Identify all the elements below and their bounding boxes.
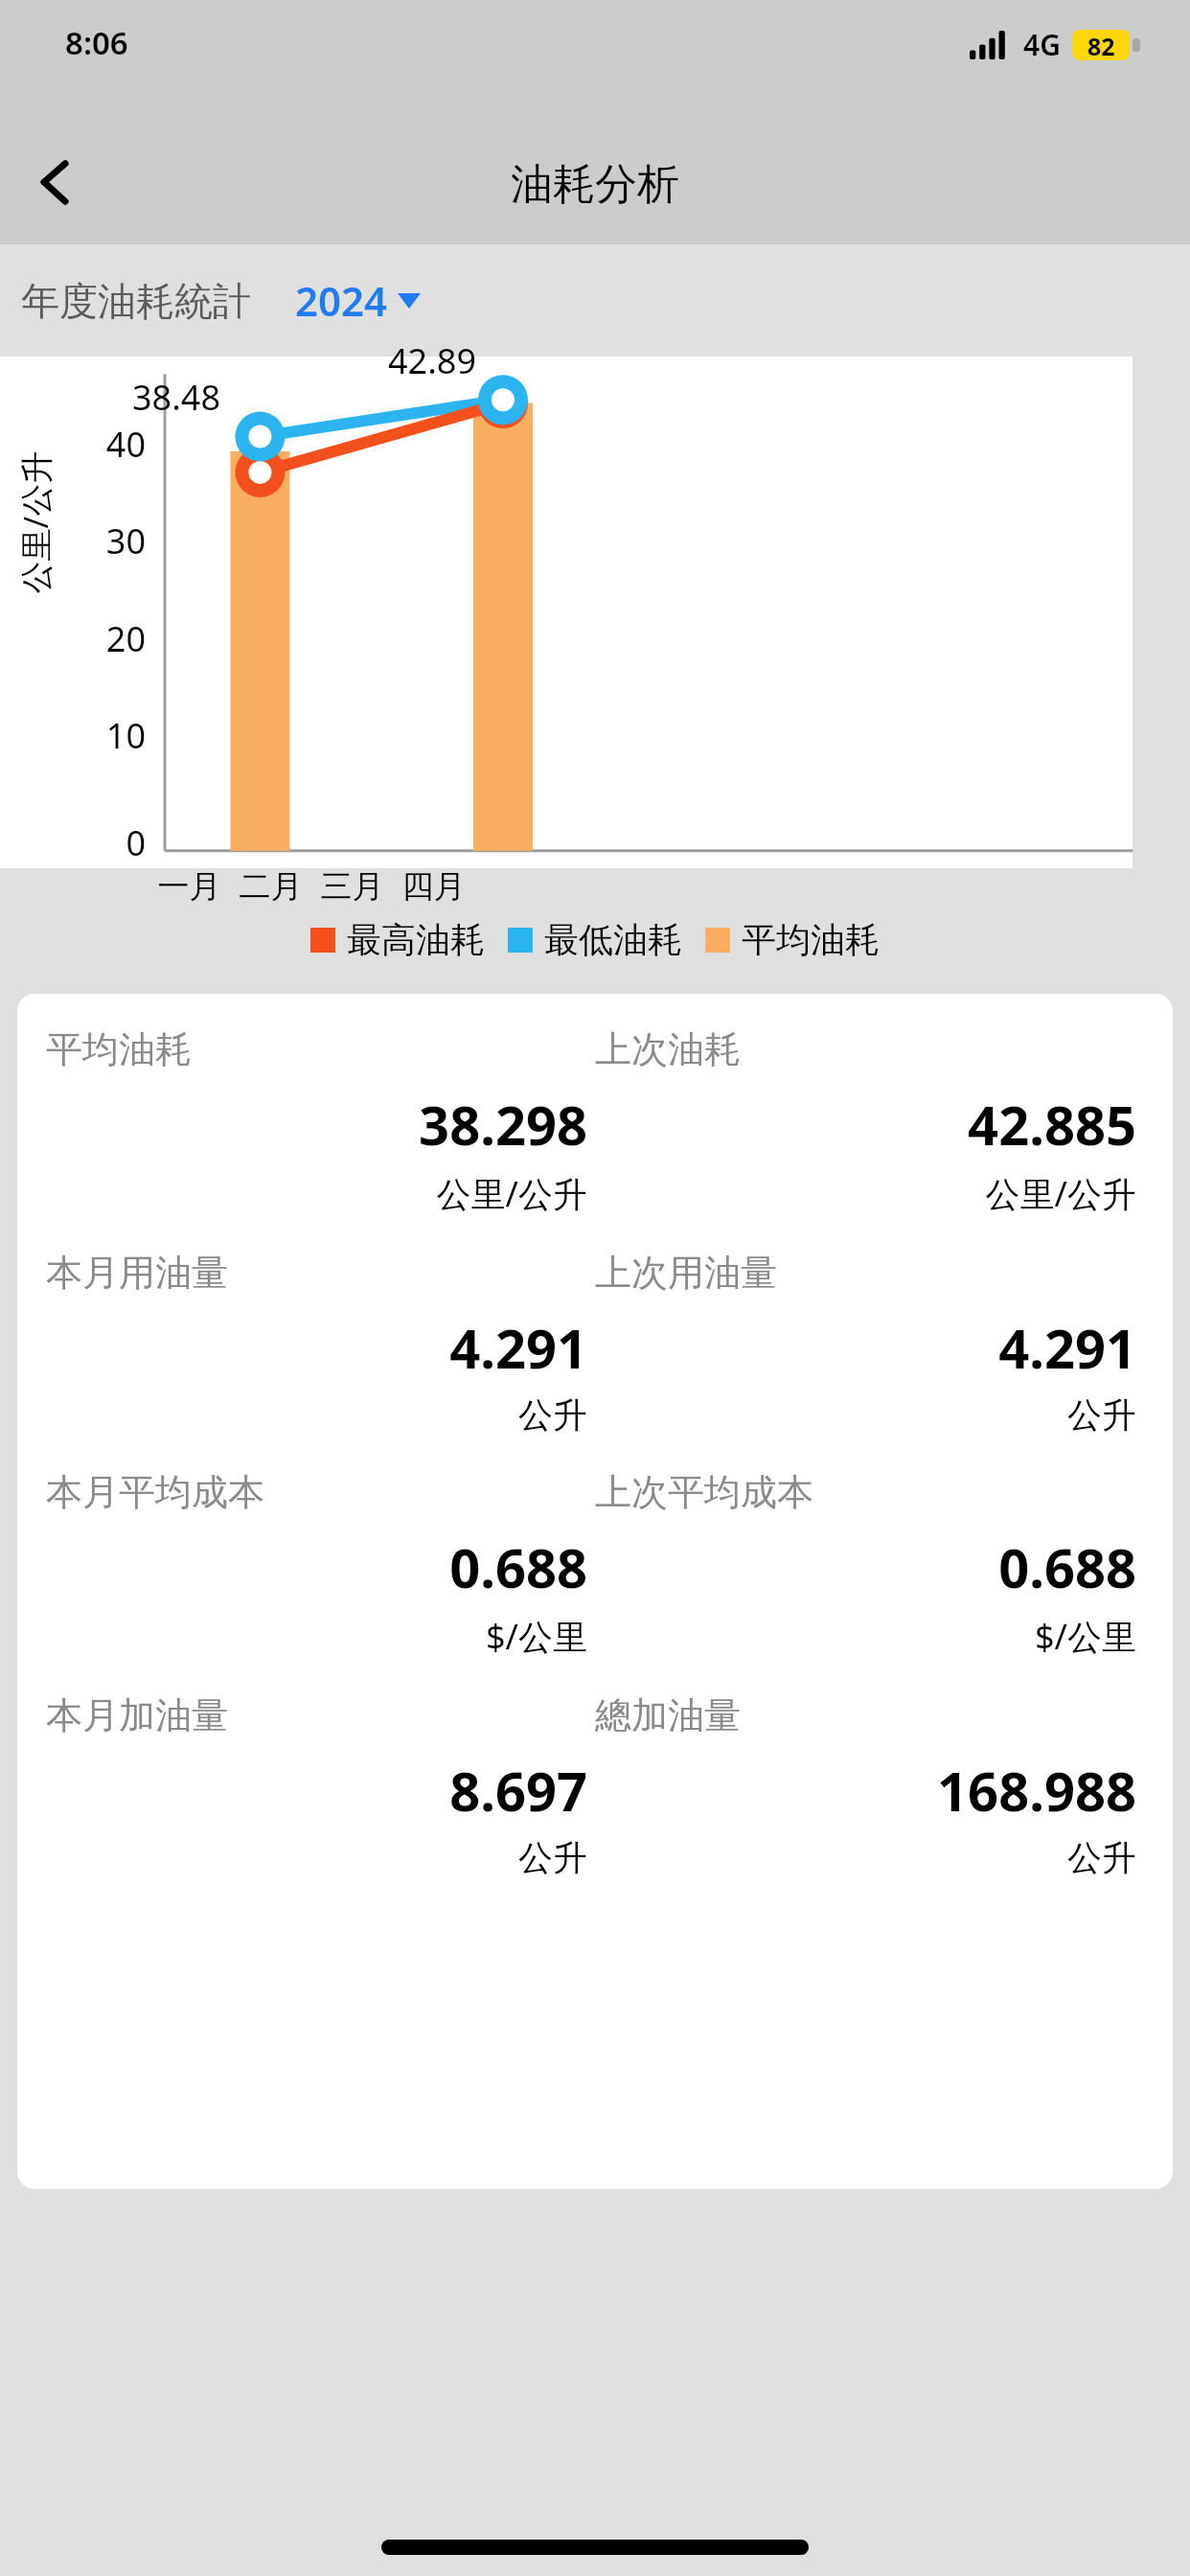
staticText: 公里/公升	[46, 1170, 587, 1217]
staticText: 三月	[311, 866, 393, 907]
staticText: 38.48	[132, 374, 221, 421]
staticText: 平均油耗	[46, 1026, 192, 1072]
staticText: 公里/公升	[595, 1170, 1136, 1217]
staticText: 油耗分析	[511, 158, 679, 211]
staticText: 總加油量	[595, 1692, 741, 1738]
button[interactable]: 本月加油量	[46, 1692, 595, 1879]
staticText: 本月平均成本	[46, 1469, 264, 1515]
button[interactable]: Back	[17, 144, 94, 220]
staticText: 0.688	[46, 1530, 587, 1603]
staticText: 年度油耗統計	[21, 277, 251, 325]
staticText: 40	[88, 421, 146, 468]
button[interactable]: 平均油耗	[46, 1026, 595, 1217]
staticText: 上次用油量	[595, 1250, 777, 1296]
button[interactable]: 本月用油量	[46, 1250, 595, 1437]
staticText: 4G	[1023, 25, 1061, 64]
button[interactable]: 總加油量	[595, 1692, 1144, 1879]
button[interactable]: 上次平均成本	[595, 1469, 1144, 1660]
staticText: 0.688	[595, 1530, 1136, 1603]
staticText: 8.697	[46, 1754, 587, 1827]
staticText: 公升	[595, 1836, 1136, 1879]
staticText: 本月用油量	[46, 1250, 228, 1296]
staticText: 4.291	[595, 1311, 1136, 1384]
staticText: 42.89	[388, 337, 477, 384]
staticText: 公升	[46, 1393, 587, 1437]
staticText: 公里/公升	[13, 451, 57, 594]
staticText: $/公里	[595, 1613, 1136, 1660]
staticText: 最低油耗	[544, 918, 682, 961]
staticText: 四月	[393, 866, 474, 907]
staticText: 30	[88, 517, 146, 564]
staticText: 平均油耗	[742, 918, 880, 961]
staticText: 最高油耗	[347, 918, 485, 961]
staticText: 上次油耗	[595, 1026, 741, 1072]
staticText: 2024	[295, 273, 388, 328]
staticText: 168.988	[595, 1754, 1136, 1827]
staticText: 20	[88, 615, 146, 662]
staticText: $/公里	[46, 1613, 587, 1660]
button[interactable]: 本月平均成本	[46, 1469, 595, 1660]
button[interactable]: 上次油耗	[595, 1026, 1144, 1217]
staticText: 二月	[230, 866, 311, 907]
staticText: 上次平均成本	[595, 1469, 813, 1515]
staticText: 82	[1087, 30, 1115, 60]
button[interactable]: 上次用油量	[595, 1250, 1144, 1437]
staticText: 公升	[595, 1393, 1136, 1437]
staticText: 本月加油量	[46, 1692, 228, 1738]
staticText: 8:06	[65, 21, 128, 64]
staticText: 公升	[46, 1836, 587, 1879]
staticText: 一月	[149, 866, 230, 907]
staticText: 4.291	[46, 1311, 587, 1384]
staticText: 38.298	[46, 1088, 587, 1161]
staticText: 0	[88, 819, 146, 866]
button[interactable]: 2024	[291, 269, 424, 332]
staticText: 10	[88, 712, 146, 759]
staticText: 42.885	[595, 1088, 1136, 1161]
